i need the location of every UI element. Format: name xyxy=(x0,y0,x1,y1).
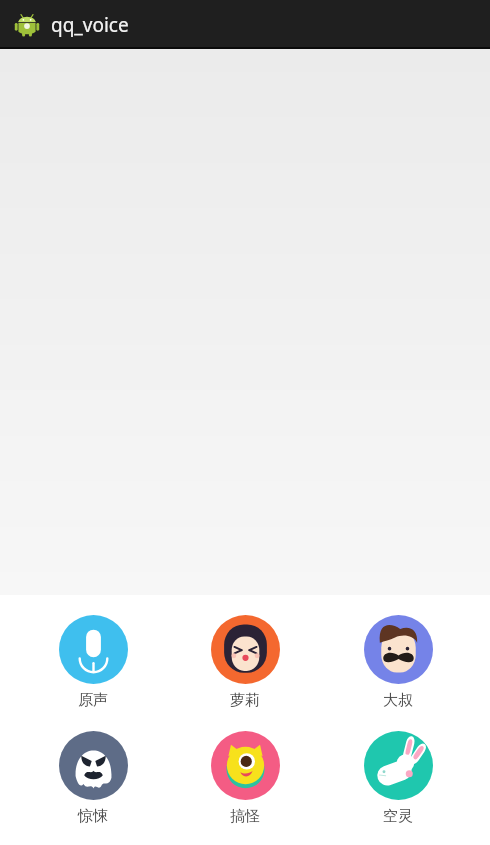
button[interactable]: 原声 xyxy=(33,613,153,712)
button[interactable]: 大叔 xyxy=(338,613,458,712)
button[interactable]: 空灵 xyxy=(338,729,458,828)
staticText: 原声 xyxy=(78,691,108,710)
button[interactable]: 萝莉 xyxy=(185,613,305,712)
button[interactable]: 搞怪 xyxy=(185,729,305,828)
staticText: 空灵 xyxy=(383,807,413,826)
other: App icon xyxy=(14,12,40,38)
staticText: 大叔 xyxy=(383,691,413,710)
staticText: 搞怪 xyxy=(230,807,260,826)
staticText: 萝莉 xyxy=(230,691,260,710)
button[interactable]: 惊悚 xyxy=(33,729,153,828)
staticText: qq_voice xyxy=(51,12,129,38)
staticText: 惊悚 xyxy=(78,807,108,826)
